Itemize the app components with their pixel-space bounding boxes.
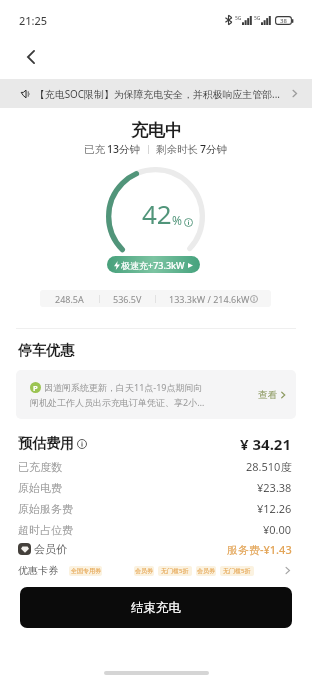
staticText: 优惠卡券 [18, 564, 58, 577]
staticText: 5G [254, 15, 261, 22]
button[interactable]: 极速充+73.3kW [107, 256, 200, 273]
staticText: 全国专用券 [71, 567, 101, 575]
button[interactable]: 结束充电 [20, 587, 292, 628]
staticText: 预估费用 [18, 435, 74, 453]
staticText: 会员券 [135, 567, 153, 575]
button[interactable]: 返回 [13, 39, 48, 74]
staticText: 原始电费 [18, 481, 62, 495]
staticText: 因道闸系统更新，白天11点-19点期间向 [44, 381, 203, 393]
staticText: 536.5V [113, 293, 142, 305]
staticText: 248.5A [55, 293, 84, 305]
staticText: 38 [280, 17, 287, 25]
staticText: 7分钟 [200, 142, 228, 156]
staticText: 已充 [84, 143, 105, 156]
staticText: 42 [142, 196, 172, 231]
staticText: 剩余时长 [156, 143, 198, 156]
staticText: 无门槛5折 [161, 567, 189, 575]
staticText: ¥0.00 [263, 522, 292, 537]
staticText: 28.510度 [246, 459, 292, 474]
staticText: 5G [235, 15, 242, 22]
staticText: 原始服务费 [18, 502, 73, 516]
staticText: % [172, 212, 182, 228]
staticText: 极速充+73.3kW [121, 259, 185, 271]
button[interactable]: P [16, 370, 296, 419]
staticText: 13分钟 [107, 142, 141, 156]
staticText: 21:25 [19, 13, 48, 28]
button[interactable]: 优惠卡券 [18, 564, 292, 577]
button[interactable]: 【充电SOC限制】为保障充电安全，并积极响应主管部... [0, 79, 312, 108]
staticText: 无门槛5折 [223, 567, 251, 575]
staticText: 已充度数 [18, 460, 62, 474]
staticText: P [33, 383, 38, 393]
staticText: 充电中 [131, 120, 182, 141]
staticText: ¥12.26 [257, 501, 292, 516]
staticText: 会员券 [197, 567, 215, 575]
staticText: ¥ 34.21 [240, 434, 292, 454]
staticText: 超时占位费 [18, 523, 73, 537]
staticText: 【充电SOC限制】为保障充电安全，并积极响应主管部... [35, 87, 287, 101]
staticText: 闸机处工作人员出示充电订单凭证、享2小… [30, 396, 205, 408]
staticText: 服务费-¥1.43 [227, 542, 292, 557]
staticText: 结束充电 [131, 600, 181, 616]
staticText: 会员价 [34, 542, 67, 556]
staticText: ¥23.38 [257, 480, 292, 495]
staticText: 133.3kW / 214.6kW [169, 293, 250, 305]
staticText: 停车优惠 [18, 342, 74, 360]
staticText: 查看 [258, 389, 277, 401]
